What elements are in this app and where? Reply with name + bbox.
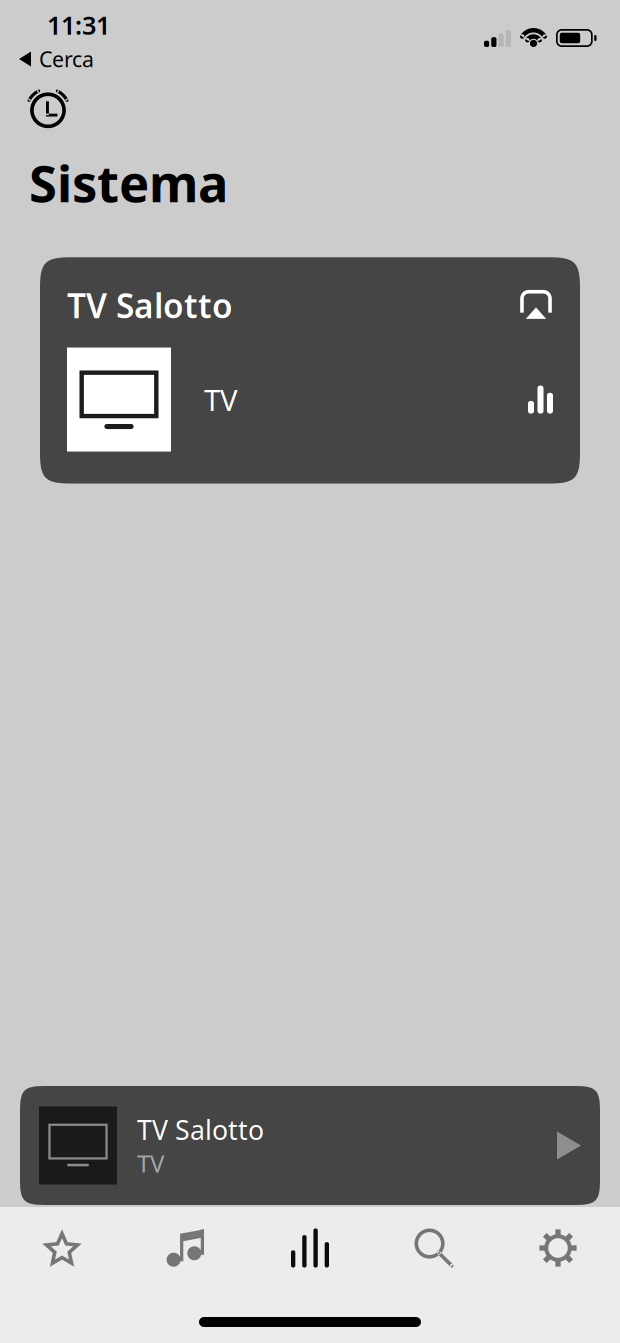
button[interactable]: Cerca bbox=[0, 47, 620, 71]
button[interactable]: Musica bbox=[124, 1207, 248, 1289]
staticText: TV bbox=[204, 380, 238, 419]
button[interactable]: Sveglia bbox=[0, 71, 82, 135]
staticText: TV bbox=[137, 1147, 164, 1179]
button[interactable]: Preferiti bbox=[0, 1207, 124, 1289]
staticText: Cerca bbox=[39, 45, 94, 73]
button[interactable]: TV Salotto bbox=[0, 1086, 620, 1207]
staticText: 11:31 bbox=[47, 8, 110, 42]
button[interactable]: Sistema bbox=[248, 1207, 372, 1289]
staticText: TV Salotto bbox=[67, 283, 233, 328]
button[interactable]: Impostazioni bbox=[496, 1207, 620, 1289]
button[interactable]: TV Salotto bbox=[0, 216, 580, 484]
button[interactable]: Cerca bbox=[372, 1207, 496, 1289]
staticText: TV Salotto bbox=[137, 1112, 264, 1147]
staticText: Sistema bbox=[29, 149, 228, 216]
